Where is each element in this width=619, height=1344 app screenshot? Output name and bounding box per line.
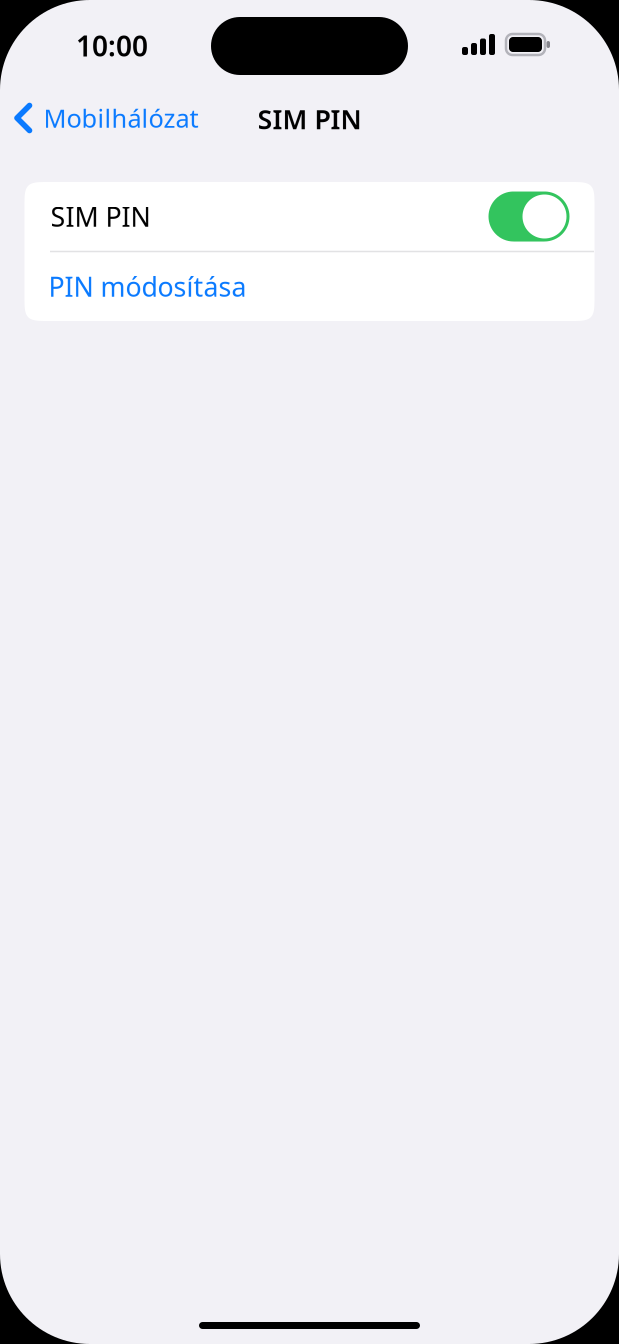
staticText: Mobilhálózat	[43, 101, 198, 135]
staticText: SIM PIN	[257, 101, 361, 137]
button[interactable]: PIN módosítása	[24, 252, 594, 321]
button[interactable]: Mobilhálózat	[0, 92, 198, 154]
button[interactable]: SIM PIN	[488, 191, 569, 241]
staticText: PIN módosítása	[48, 269, 246, 304]
staticText: 10:00	[76, 27, 148, 64]
staticText: SIM PIN	[50, 199, 150, 234]
